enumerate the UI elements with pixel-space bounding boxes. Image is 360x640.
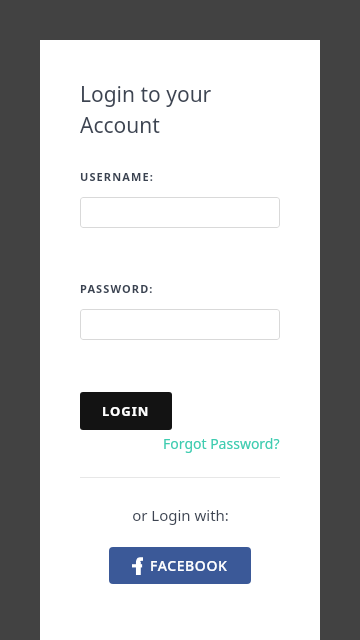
button[interactable]: Username input bbox=[80, 197, 280, 228]
staticText: Forgot Password? bbox=[163, 434, 280, 453]
button[interactable]: FACEBOOK bbox=[109, 547, 251, 584]
staticText: LOGIN bbox=[102, 402, 150, 420]
button[interactable]: LOGIN bbox=[80, 392, 172, 430]
button[interactable]: Password input bbox=[80, 309, 280, 340]
staticText: Login to your Account bbox=[80, 80, 212, 139]
staticText: or Login with: bbox=[132, 505, 229, 525]
staticText: USERNAME: bbox=[80, 169, 154, 184]
staticText: PASSWORD: bbox=[80, 281, 154, 296]
staticText: FACEBOOK bbox=[150, 556, 228, 575]
button[interactable]: Forgot Password? bbox=[163, 434, 280, 453]
